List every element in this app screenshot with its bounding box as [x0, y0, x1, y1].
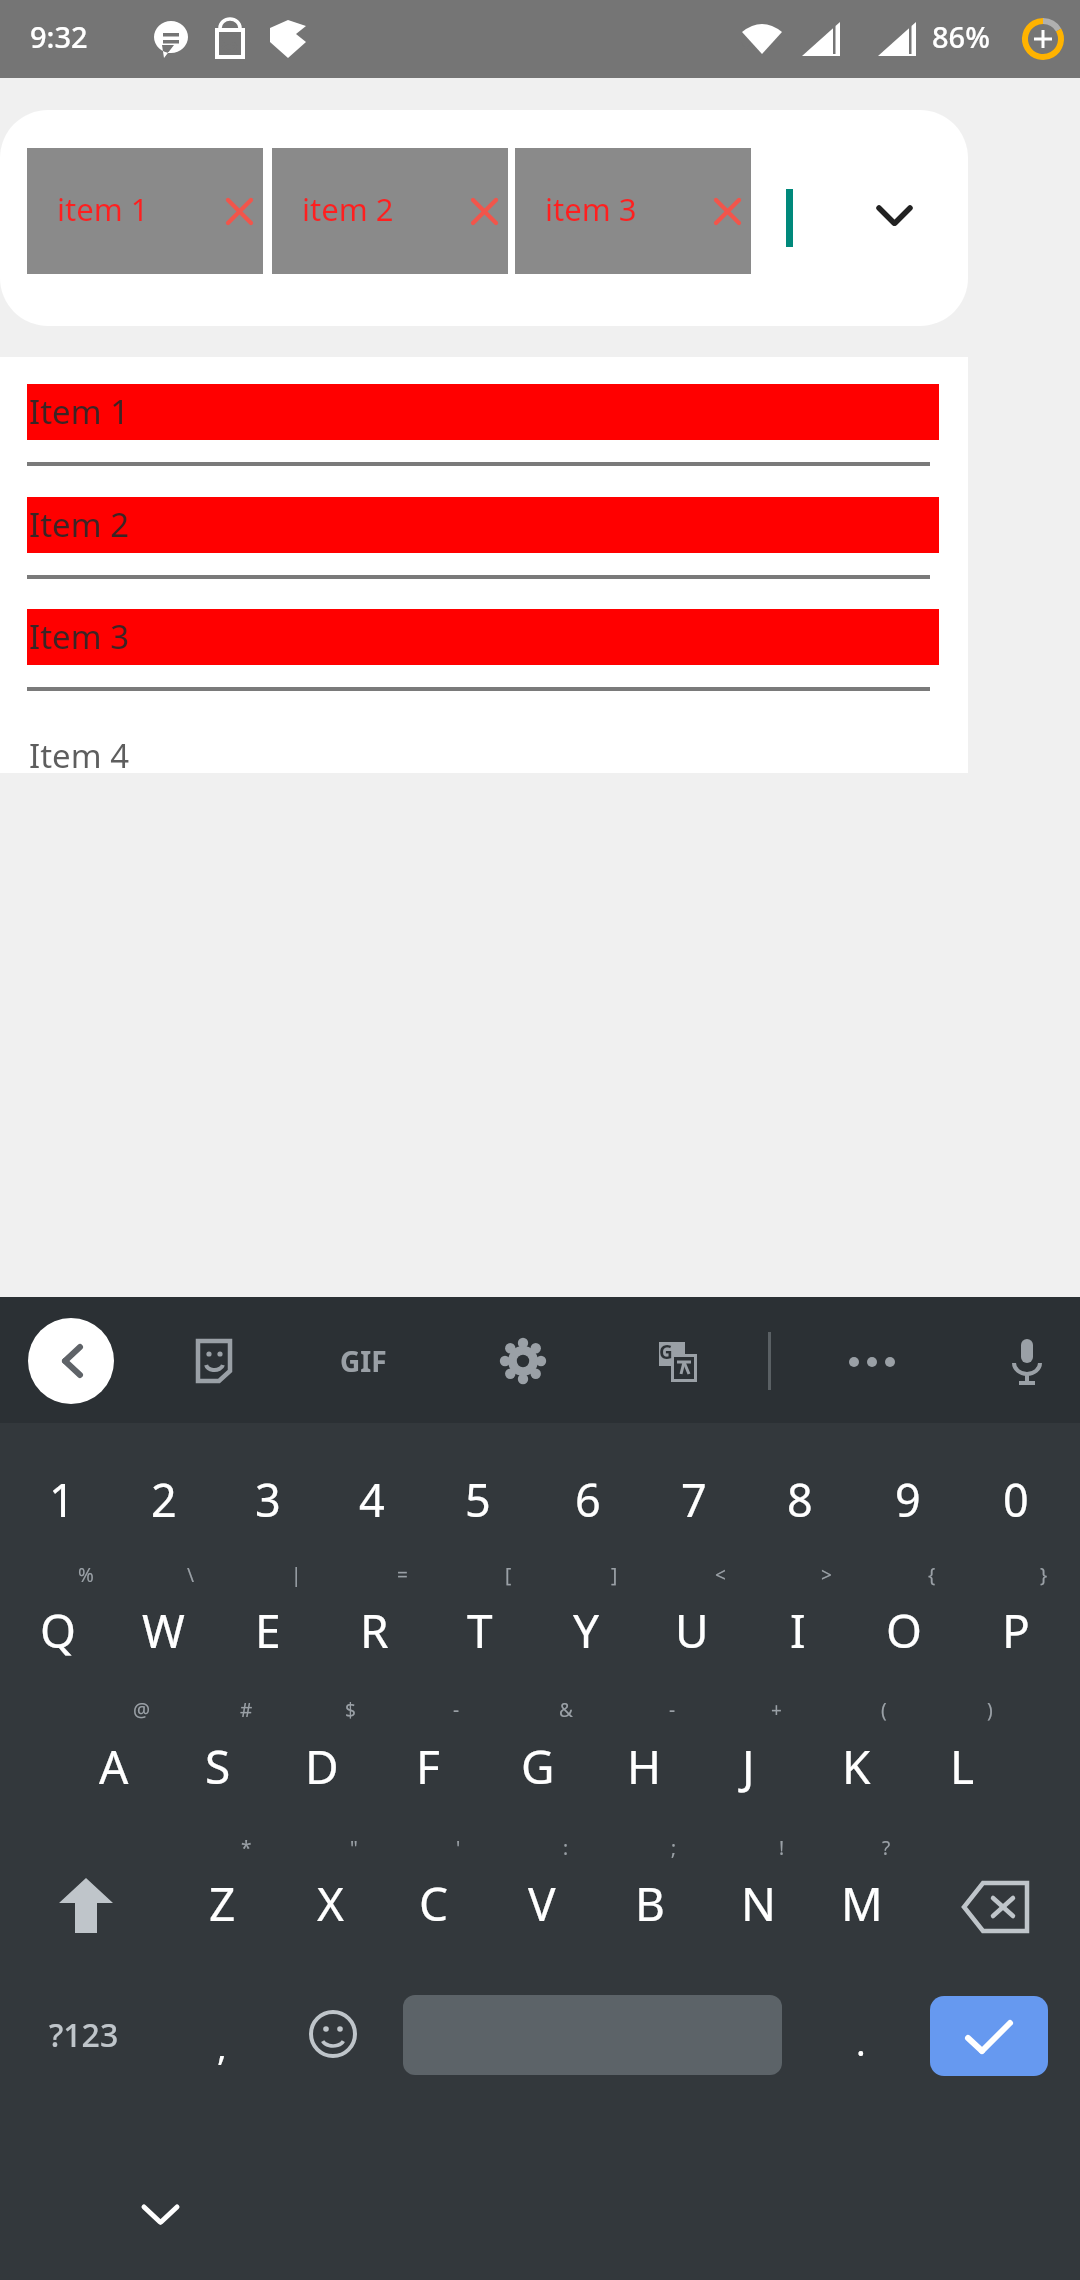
staticText: < — [715, 1562, 726, 1588]
staticText: - — [453, 1697, 460, 1723]
button[interactable]: Q — [10, 1571, 106, 1689]
button[interactable]: 1 — [14, 1440, 110, 1558]
button[interactable]: Expand dropdown — [853, 176, 935, 258]
staticText: ' — [456, 1835, 461, 1861]
button[interactable]: Item 4 — [27, 728, 939, 784]
button[interactable]: item 3 — [515, 148, 751, 274]
button[interactable]: 0 — [968, 1440, 1064, 1558]
button[interactable]: Shift — [36, 1855, 136, 1959]
button[interactable]: N — [710, 1844, 806, 1962]
button[interactable]: ?123 — [9, 1981, 159, 2089]
button[interactable]: W — [115, 1571, 211, 1689]
button[interactable]: G — [490, 1707, 586, 1825]
staticText: ?123 — [49, 2013, 119, 2057]
button[interactable]: 8 — [752, 1440, 848, 1558]
button[interactable]: 7 — [646, 1440, 742, 1558]
button[interactable]: K — [808, 1707, 904, 1825]
staticText: ) — [987, 1697, 993, 1723]
staticText: ! — [779, 1835, 785, 1861]
button[interactable]: O — [856, 1571, 952, 1689]
staticText: GIF — [340, 1342, 387, 1380]
button[interactable]: H — [596, 1707, 692, 1825]
button[interactable]: U — [644, 1571, 740, 1689]
button[interactable]: D — [274, 1707, 370, 1825]
staticText: Item 3 — [29, 614, 130, 659]
staticText: 9:32 — [30, 17, 88, 56]
staticText: . — [856, 2018, 866, 2067]
button[interactable]: R — [326, 1571, 422, 1689]
button[interactable]: S — [170, 1707, 266, 1825]
button[interactable]: P — [968, 1571, 1064, 1689]
button[interactable]: 9 — [860, 1440, 956, 1558]
staticText: item 3 — [545, 188, 637, 230]
button[interactable]: C — [386, 1844, 482, 1962]
button[interactable]: M — [814, 1844, 910, 1962]
staticText: H — [627, 1735, 662, 1798]
button[interactable]: I — [750, 1571, 846, 1689]
staticText: % — [78, 1562, 94, 1588]
button[interactable]: F — [380, 1707, 476, 1825]
staticText: # — [240, 1697, 253, 1723]
staticText: " — [350, 1835, 358, 1861]
staticText: J — [742, 1735, 755, 1798]
button[interactable]: Enter — [930, 1996, 1048, 2076]
button[interactable]: Voice input — [985, 1320, 1067, 1402]
button[interactable]: 5 — [430, 1440, 526, 1558]
button[interactable]: Translate — [637, 1320, 719, 1402]
button[interactable]: 2 — [116, 1440, 212, 1558]
staticText: Y — [573, 1599, 600, 1662]
button[interactable]: Item 1 — [27, 384, 939, 440]
staticText: K — [842, 1735, 871, 1798]
staticText: F — [416, 1735, 440, 1798]
button[interactable]: V — [494, 1844, 590, 1962]
staticText: O — [886, 1599, 922, 1662]
staticText: C — [419, 1872, 449, 1935]
button[interactable]: Backspace — [945, 1855, 1049, 1959]
button[interactable]: 6 — [540, 1440, 636, 1558]
staticText: G — [521, 1735, 555, 1798]
button[interactable]: . — [813, 1988, 909, 2096]
button[interactable]: J — [700, 1707, 796, 1825]
button[interactable]: X — [282, 1844, 378, 1962]
button[interactable]: item 2 — [272, 148, 508, 274]
button[interactable]: Item 2 — [27, 497, 939, 553]
button[interactable]: T — [432, 1571, 528, 1689]
staticText: L — [950, 1735, 975, 1798]
staticText: { — [928, 1562, 936, 1588]
button[interactable]: B — [602, 1844, 698, 1962]
staticText: $ — [345, 1697, 356, 1723]
button[interactable]: Settings — [482, 1320, 564, 1402]
staticText: Item 1 — [29, 389, 130, 434]
staticText: | — [291, 1562, 302, 1588]
staticText: ; — [671, 1835, 677, 1861]
button[interactable]: More options — [829, 1320, 915, 1402]
staticText: , — [217, 2022, 227, 2071]
button[interactable]: Hide keyboard — [120, 2180, 200, 2250]
button[interactable]: Z — [174, 1844, 270, 1962]
staticText: & — [559, 1697, 573, 1723]
button[interactable]: Y — [538, 1571, 634, 1689]
staticText: 7 — [681, 1469, 707, 1530]
staticText: 9 — [895, 1469, 921, 1530]
button[interactable]: Back — [28, 1318, 114, 1404]
button[interactable]: 4 — [324, 1440, 420, 1558]
button[interactable]: A — [66, 1707, 162, 1825]
button[interactable]: L — [914, 1707, 1010, 1825]
button[interactable]: Item 3 — [27, 609, 939, 665]
staticText: A — [99, 1735, 129, 1798]
staticText: ] — [611, 1562, 618, 1588]
button[interactable]: item 1 — [27, 148, 263, 274]
button[interactable]: Emoji — [281, 1982, 381, 2088]
staticText: I — [790, 1599, 806, 1662]
button[interactable]: E — [220, 1571, 316, 1689]
staticText: 4 — [359, 1469, 385, 1530]
staticText: T — [467, 1599, 493, 1662]
button[interactable]: GIF — [313, 1320, 413, 1402]
staticText: @ — [133, 1697, 151, 1723]
button[interactable]: , — [172, 1992, 272, 2100]
staticText: W — [142, 1599, 185, 1662]
button[interactable]: Stickers — [172, 1320, 254, 1402]
button[interactable]: 3 — [220, 1440, 316, 1558]
staticText: 0 — [1003, 1469, 1029, 1530]
